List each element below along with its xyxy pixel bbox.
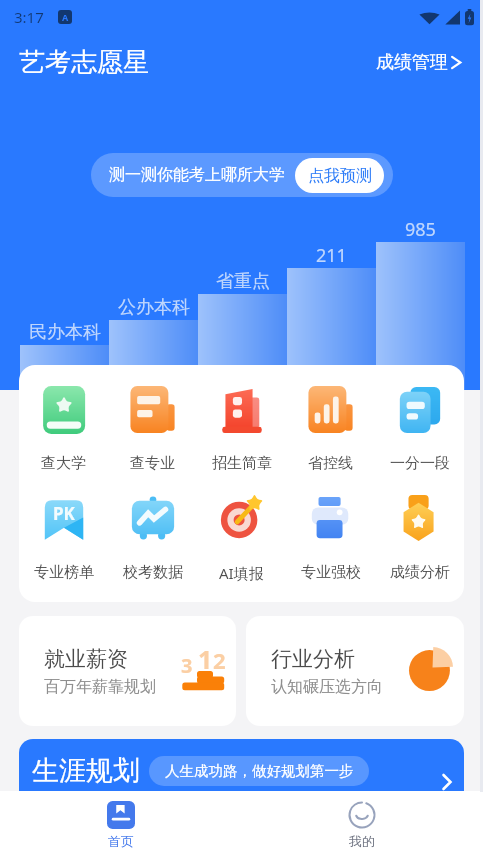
staticText: 专业榜单 [34, 563, 94, 582]
button[interactable]: 就业薪资 [19, 616, 236, 726]
button[interactable]: 成绩管理 [376, 51, 463, 74]
staticText: 211 [316, 243, 347, 267]
button[interactable]: 查大学 [19, 386, 108, 473]
staticText: 生涯规划 [32, 754, 140, 788]
staticText: 公办本科 [118, 296, 190, 319]
button[interactable]: 招生简章 [197, 386, 286, 473]
staticText: AI填报 [219, 563, 264, 583]
button[interactable]: 专业强校 [286, 495, 375, 582]
staticText: 查大学 [41, 454, 86, 473]
staticText: 1 [198, 642, 213, 676]
staticText: A [62, 11, 69, 23]
staticText: 一分一段 [390, 454, 450, 473]
staticText: 2 [213, 645, 225, 675]
staticText: 我的 [349, 833, 375, 849]
button[interactable]: PK [19, 495, 108, 582]
button[interactable]: 成绩分析 [375, 495, 464, 582]
staticText: 行业分析 [271, 646, 355, 672]
staticText: 3 [181, 652, 193, 679]
staticText: 首页 [108, 833, 134, 849]
button[interactable]: 我的 [241, 791, 483, 858]
staticText: 百万年薪靠规划 [44, 677, 156, 697]
button[interactable]: 校考数据 [108, 495, 197, 582]
staticText: 民办本科 [29, 321, 101, 344]
staticText: 专业强校 [301, 563, 361, 582]
staticText: 省控线 [308, 454, 353, 473]
button[interactable]: 省控线 [286, 386, 375, 473]
button[interactable]: 行业分析 [246, 616, 464, 726]
staticText: 成绩分析 [390, 563, 450, 582]
staticText: PK [53, 502, 75, 525]
staticText: 人生成功路，做好规划第一步 [165, 762, 354, 780]
button[interactable]: AI填报 [197, 495, 286, 583]
staticText: 艺考志愿星 [19, 46, 149, 79]
staticText: 认知碾压选方向 [271, 677, 383, 697]
staticText: 成绩管理 [376, 51, 448, 74]
button[interactable]: 测一测你能考上哪所大学 [91, 153, 393, 197]
button[interactable]: 首页 [0, 791, 241, 858]
staticText: 查专业 [130, 454, 175, 473]
button[interactable]: 生涯规划 [19, 739, 464, 811]
button[interactable]: 查专业 [108, 386, 197, 473]
staticText: 点我预测 [308, 166, 372, 186]
staticText: 校考数据 [123, 563, 183, 582]
button[interactable]: 一分一段 [375, 386, 464, 473]
staticText: 省重点 [216, 270, 270, 293]
staticText: 测一测你能考上哪所大学 [109, 165, 285, 185]
staticText: 985 [405, 217, 436, 241]
staticText: 3:17 [14, 7, 44, 27]
staticText: 招生简章 [212, 454, 272, 473]
staticText: 就业薪资 [44, 646, 128, 672]
